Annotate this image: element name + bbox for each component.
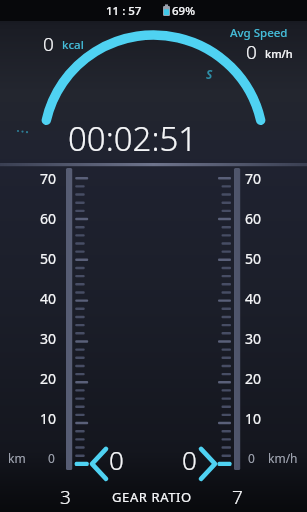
staticText: 50 (40, 249, 57, 268)
staticText: 40 (245, 289, 262, 308)
staticText: 50 (245, 249, 262, 268)
staticText: 69% (172, 3, 195, 19)
staticText: 0 (43, 31, 54, 57)
staticText: 7 (232, 484, 243, 510)
staticText: 0 (48, 450, 55, 466)
button[interactable]: Speed gauge (178, 440, 288, 484)
staticText: 40 (40, 289, 57, 308)
staticText: 70 (245, 169, 262, 188)
button[interactable]: Distance gauge (20, 440, 130, 484)
staticText: kcal (62, 37, 84, 53)
staticText: 00:02:51 (68, 116, 198, 161)
staticText: GEAR RATIO (112, 488, 192, 506)
staticText: 10 (40, 409, 57, 428)
staticText: 30 (245, 329, 262, 348)
staticText: 30 (40, 329, 57, 348)
staticText: S (206, 66, 213, 82)
staticText: km/h (265, 46, 293, 61)
staticText: Avg Speed (230, 25, 288, 41)
staticText: 10 (245, 409, 262, 428)
staticText: 3 (60, 484, 71, 510)
staticText: 60 (245, 209, 262, 228)
button[interactable]: Session progress arc (60, 60, 248, 110)
staticText: km/h (268, 450, 298, 466)
staticText: 20 (245, 369, 262, 388)
staticText: km (8, 450, 26, 466)
staticText: 20 (40, 369, 57, 388)
staticText: 0 (246, 39, 257, 65)
staticText: 11 : 57 (106, 3, 142, 19)
button[interactable]: 3 (50, 484, 260, 510)
staticText: 0 (248, 450, 255, 466)
button[interactable]: 0 (30, 30, 108, 56)
staticText: 60 (40, 209, 57, 228)
button[interactable]: 00:02:51 (68, 116, 240, 158)
staticText: 0 (109, 442, 124, 477)
staticText: 70 (40, 169, 57, 188)
staticText: 0 (182, 442, 197, 477)
button[interactable]: Avg Speed (222, 25, 304, 63)
